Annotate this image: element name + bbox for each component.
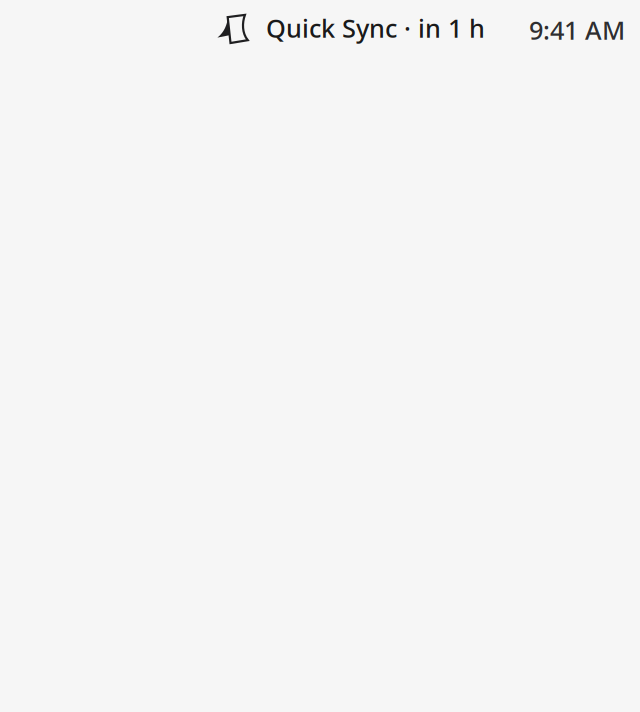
button[interactable]: Quick Sync, in 1 hour, 9:41 AM: [210, 8, 620, 48]
staticText: 9:41 AM: [529, 13, 625, 47]
staticText: Quick Sync · in 1 h: [266, 11, 485, 45]
